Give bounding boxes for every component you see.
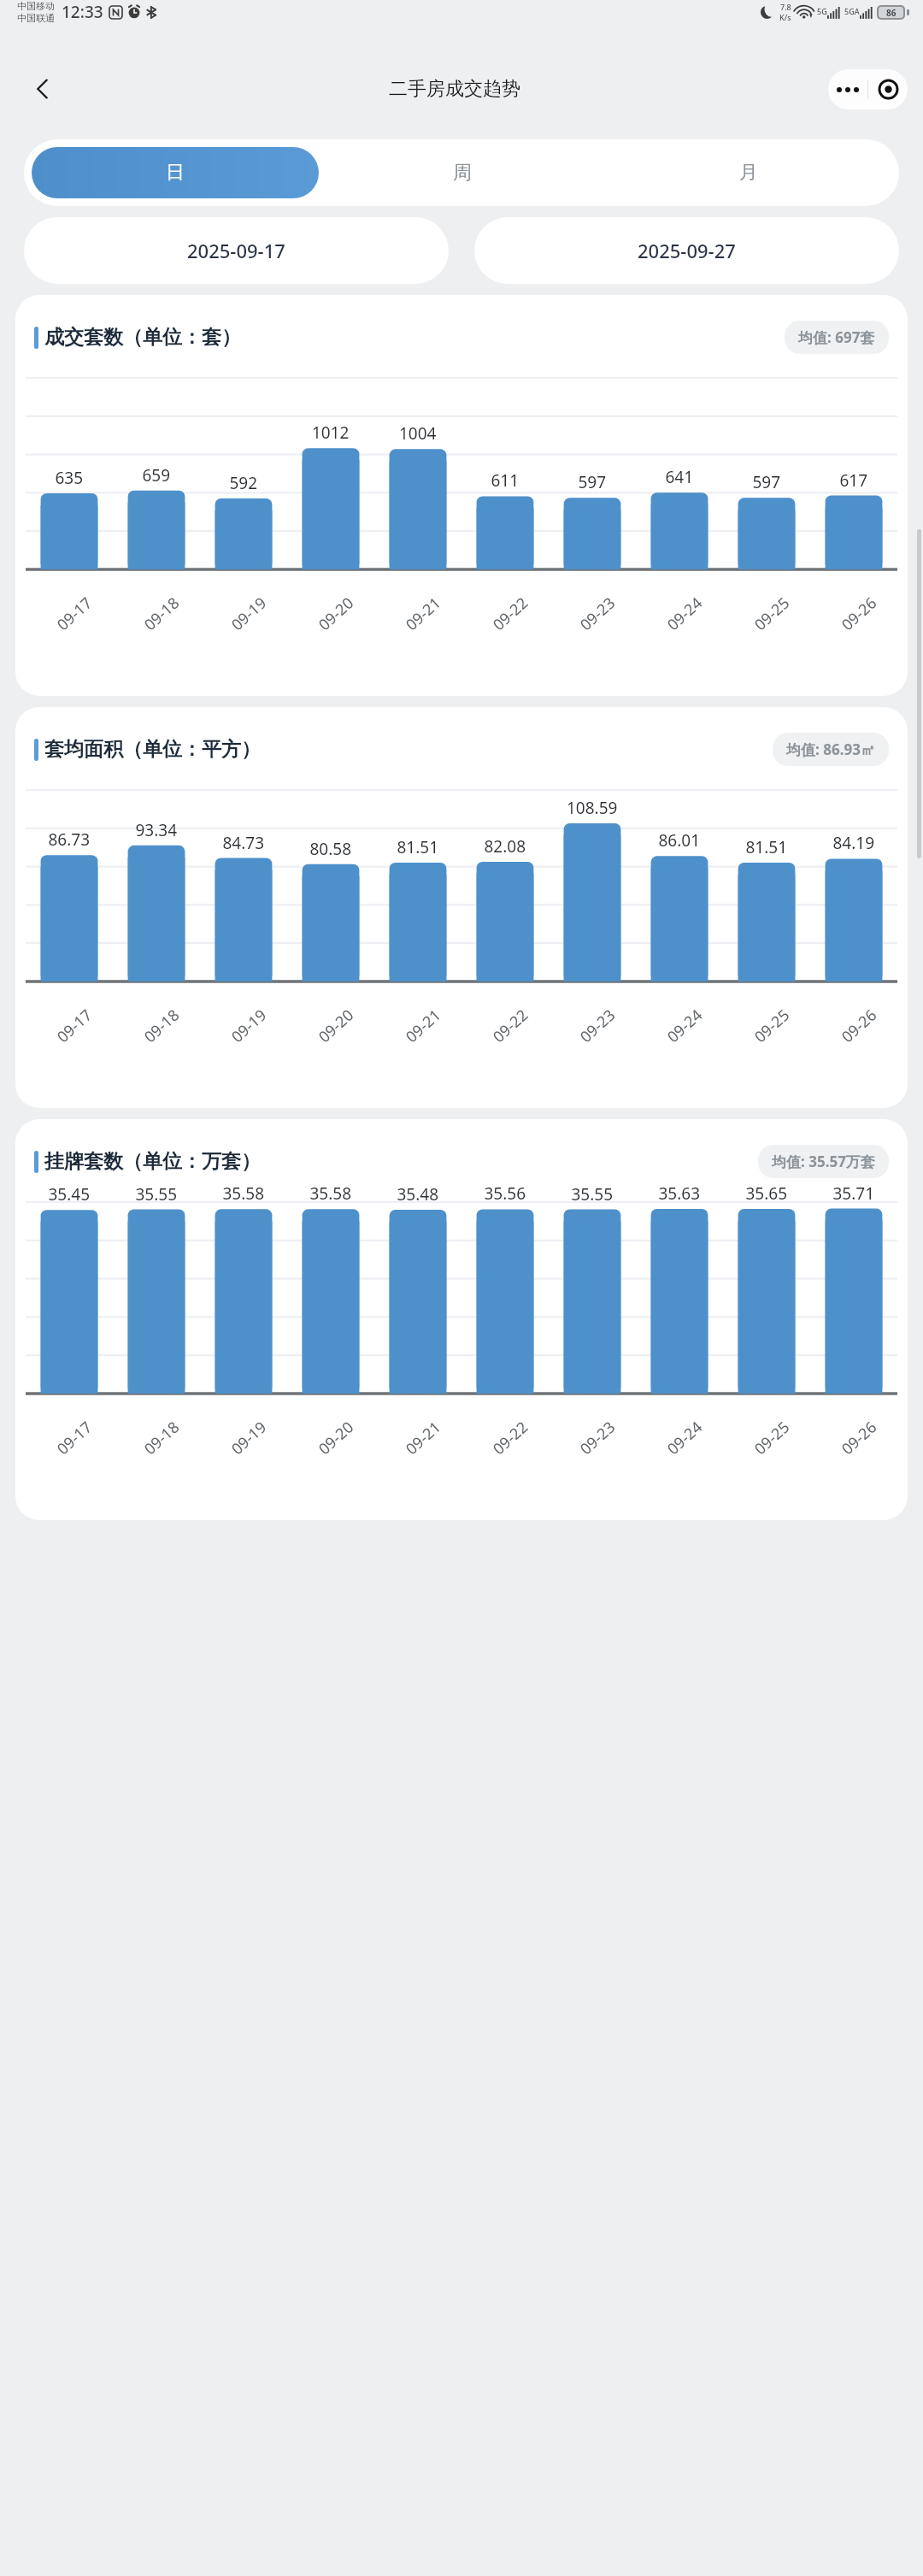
button[interactable]: 2025-09-27 — [474, 217, 899, 284]
button[interactable]: 周 — [319, 147, 605, 198]
staticText: 挂牌套数（单位：万套） — [44, 1149, 261, 1174]
staticText: 月 — [739, 161, 758, 185]
staticText: 中国移动 — [17, 0, 55, 12]
button[interactable]: 日 — [32, 147, 319, 198]
button[interactable]: More — [828, 69, 867, 109]
button[interactable]: 成交套数（单位：套） — [15, 295, 908, 696]
staticText: 日 — [166, 161, 185, 185]
button[interactable]: 月 — [605, 147, 891, 198]
staticText: 86 — [886, 7, 897, 18]
staticText: 7.8 — [780, 2, 791, 12]
staticText: K/s — [779, 12, 791, 22]
staticText: 均值: 697套 — [798, 327, 875, 347]
button[interactable]: 套均面积（单位：平方） — [15, 707, 908, 1108]
staticText: 均值: 35.57万套 — [772, 1152, 875, 1171]
button[interactable]: 2025-09-17 — [24, 217, 449, 284]
staticText: 周 — [453, 161, 472, 185]
staticText: 5GA — [844, 6, 860, 16]
button[interactable]: Back — [21, 67, 65, 111]
button[interactable]: Target — [868, 69, 908, 109]
staticText: 12:33 — [62, 1, 103, 23]
staticText: 二手房成交趋势 — [389, 77, 520, 101]
staticText: 均值: 86.93㎡ — [786, 740, 875, 759]
staticText: 2025-09-17 — [187, 238, 285, 263]
staticText: 中国联通 — [17, 12, 55, 24]
staticText: 2025-09-27 — [638, 238, 736, 263]
staticText: 成交套数（单位：套） — [44, 325, 241, 350]
button[interactable]: 挂牌套数（单位：万套） — [15, 1119, 908, 1520]
staticText: 套均面积（单位：平方） — [44, 737, 261, 762]
staticText: 5G — [817, 6, 827, 16]
